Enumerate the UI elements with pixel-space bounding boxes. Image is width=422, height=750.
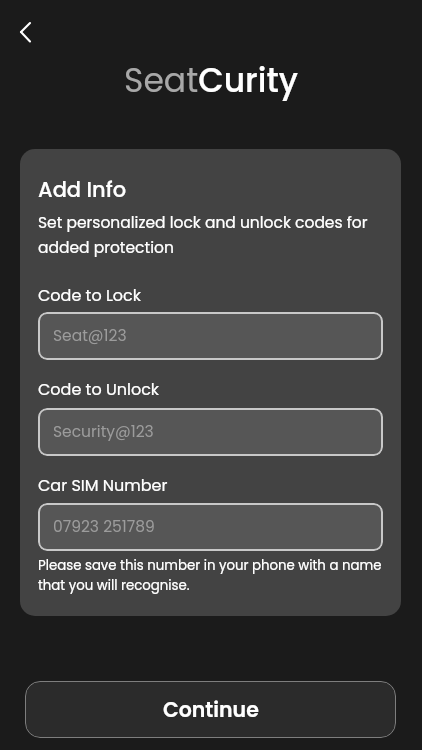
staticText: Car SIM Number	[38, 474, 168, 496]
staticText: 07923 251789	[53, 516, 155, 538]
staticText: Add Info	[38, 175, 127, 204]
staticText: Continue	[163, 695, 259, 724]
staticText: Code to Unlock	[38, 378, 160, 400]
button[interactable]: Continue	[25, 681, 396, 738]
button[interactable]: Seat@123	[38, 312, 383, 360]
button[interactable]: Security@123	[38, 408, 383, 456]
staticText: Code to Lock	[38, 284, 142, 306]
staticText: Security@123	[53, 421, 154, 443]
button[interactable]: 07923 251789	[38, 503, 383, 551]
staticText: Please save this number in your phone wi…	[38, 556, 398, 594]
staticText: Set personalized lock and unlock codes f…	[38, 212, 388, 258]
staticText: Seat@123	[53, 325, 127, 347]
staticText: SeatCurity	[124, 57, 298, 103]
button[interactable]: Back	[3, 13, 41, 51]
